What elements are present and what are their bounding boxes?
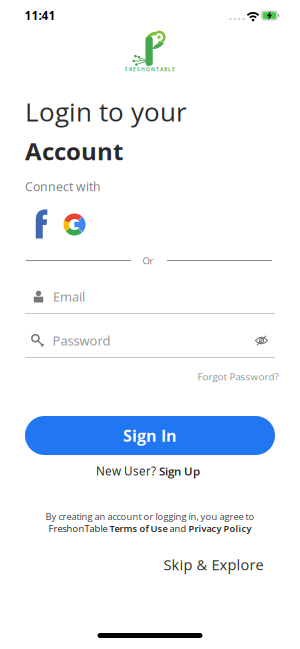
staticText: F R E S H O N T A B L E (125, 66, 175, 73)
staticText: Account (25, 135, 123, 167)
staticText: Email (53, 288, 85, 305)
staticText: Login to your (25, 94, 187, 129)
staticText: Or (142, 254, 153, 267)
button[interactable]: Show password (255, 335, 268, 346)
staticText: Password (52, 332, 110, 349)
button[interactable]: Skip & Explore (163, 555, 263, 574)
staticText: Skip & Explore (163, 555, 263, 574)
staticText: FreshonTable Terms of Use and Privacy Po… (48, 522, 251, 535)
button[interactable]: Sign In (25, 416, 275, 455)
staticText: Connect with (25, 178, 101, 195)
button[interactable]: Sign in with Facebook (33, 209, 49, 239)
button[interactable]: Forgot Password? (197, 370, 278, 383)
staticText: By creating an account or logging in, yo… (45, 510, 254, 523)
staticText: Sign In (123, 425, 177, 446)
button[interactable]: New User? Sign Up (96, 463, 200, 479)
button[interactable]: Sign in with Google (63, 213, 85, 235)
staticText: New User? Sign Up (96, 463, 200, 479)
staticText: 11:41 (24, 7, 55, 24)
staticText: Forgot Password? (197, 370, 278, 383)
